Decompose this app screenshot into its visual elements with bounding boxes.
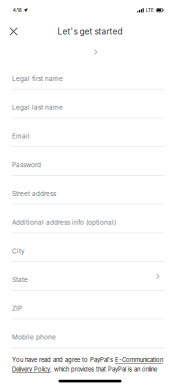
staticText: Email: [12, 132, 30, 140]
staticText: Mobile phone: [12, 333, 56, 341]
staticText: State: [12, 276, 28, 284]
staticText: LTE: [146, 7, 154, 13]
staticText: Let's get started: [57, 26, 122, 37]
staticText: Additional address info (optional): [12, 218, 116, 226]
staticText: ZIP: [12, 305, 22, 312]
button[interactable]: City: [0, 233, 180, 262]
button[interactable]: Close: [0, 21, 27, 42]
button[interactable]: More: [94, 49, 97, 55]
button[interactable]: State: [0, 262, 180, 291]
button[interactable]: Email: [0, 118, 180, 147]
staticText: Legal last name: [12, 104, 63, 111]
button[interactable]: Additional address info (optional): [0, 205, 180, 233]
button[interactable]: Legal last name: [0, 90, 180, 118]
button[interactable]: Password: [0, 147, 180, 176]
button[interactable]: You have read and agree to PayPal's E-Co…: [0, 356, 180, 373]
staticText: You have read and agree to PayPal's E-Co…: [12, 356, 163, 373]
staticText: Street address: [12, 190, 56, 197]
staticText: City: [12, 247, 25, 255]
staticText: Password: [12, 161, 41, 169]
staticText: Legal first name: [12, 75, 63, 83]
button[interactable]: ZIP: [0, 291, 180, 319]
button[interactable]: Legal first name: [0, 61, 180, 90]
button[interactable]: Mobile phone: [0, 320, 180, 348]
staticText: 4:18: [13, 7, 22, 13]
button[interactable]: Street address: [0, 176, 180, 205]
